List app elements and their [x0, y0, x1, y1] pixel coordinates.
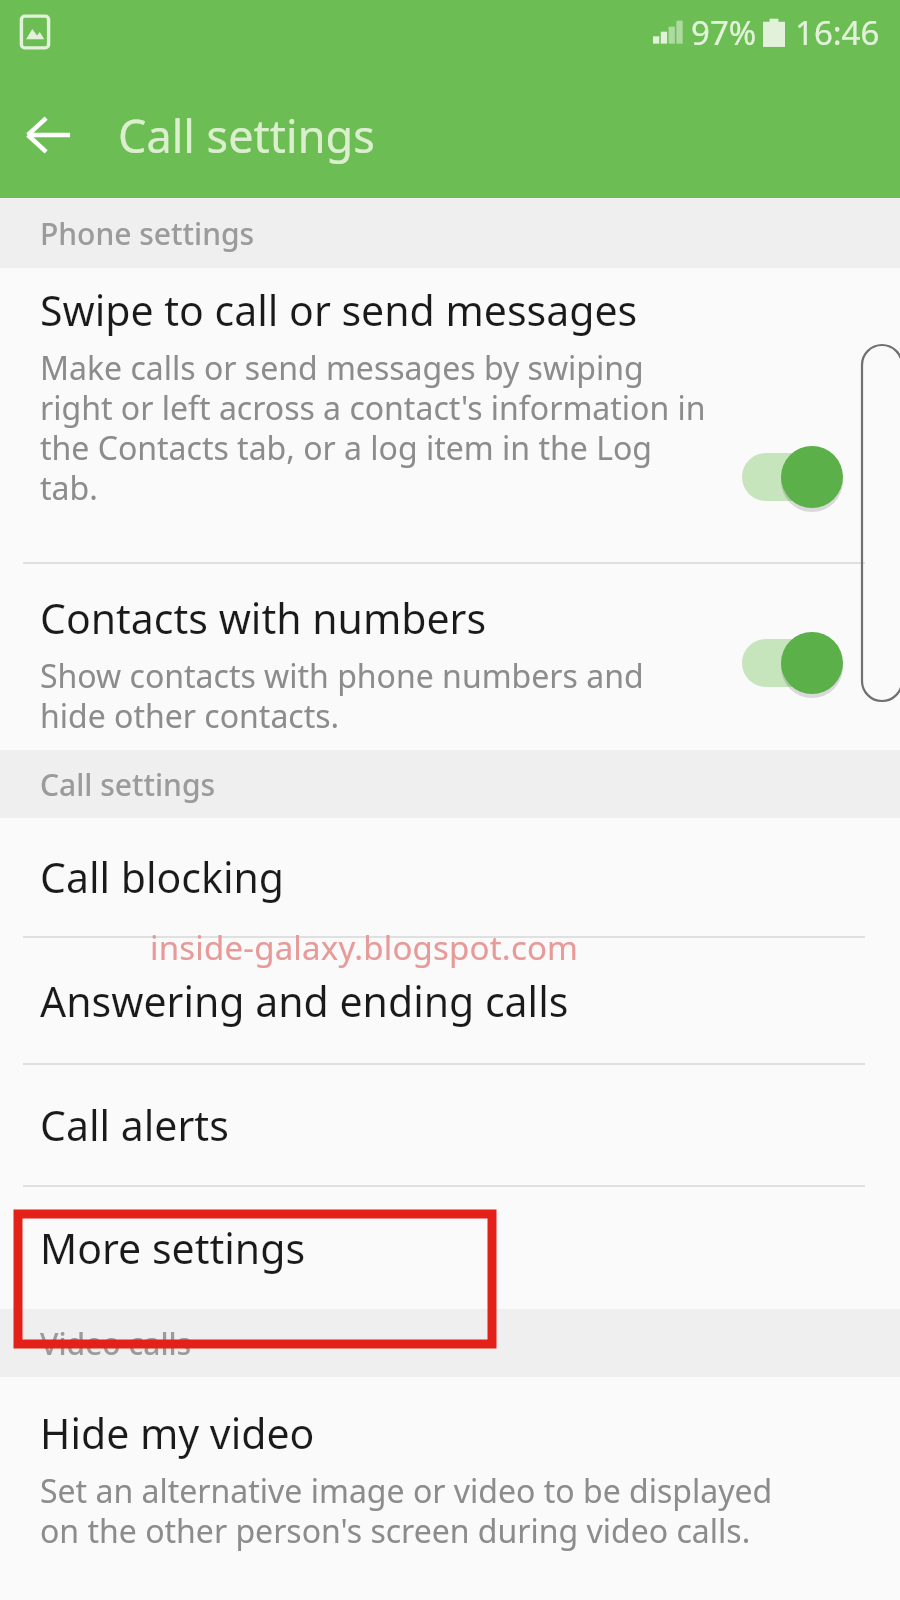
- button[interactable]: Call blocking: [0, 818, 900, 936]
- staticText: Call settings: [40, 764, 216, 805]
- staticText: Contacts with numbers: [40, 590, 487, 646]
- staticText: Answering and ending calls: [40, 973, 569, 1029]
- button[interactable]: Call alerts: [0, 1065, 900, 1185]
- staticText: 16:46: [795, 10, 880, 55]
- staticText: Make calls or send messages by swiping r…: [40, 346, 710, 510]
- staticText: inside-galaxy.blogspot.com: [150, 925, 579, 970]
- staticText: Video calls: [40, 1323, 192, 1364]
- staticText: Call settings: [118, 105, 375, 166]
- button[interactable]: Contacts with numbers: [0, 564, 900, 750]
- staticText: Show contacts with phone numbers and hid…: [40, 654, 710, 738]
- staticText: Hide my video: [40, 1405, 315, 1461]
- button[interactable]: More settings: [0, 1187, 900, 1309]
- button[interactable]: Swipe to call or send messages: [0, 268, 900, 562]
- staticText: Swipe to call or send messages: [40, 282, 638, 338]
- staticText: Set an alternative image or video to be …: [40, 1469, 800, 1553]
- button[interactable]: Hide my video: [0, 1377, 900, 1597]
- staticText: 97%: [691, 10, 757, 55]
- button[interactable]: Back: [0, 87, 96, 183]
- staticText: Phone settings: [40, 213, 255, 254]
- staticText: More settings: [40, 1220, 306, 1276]
- staticText: Call alerts: [40, 1097, 229, 1153]
- staticText: Call blocking: [40, 849, 285, 905]
- button[interactable]: Answering and ending calls: [0, 938, 900, 1063]
